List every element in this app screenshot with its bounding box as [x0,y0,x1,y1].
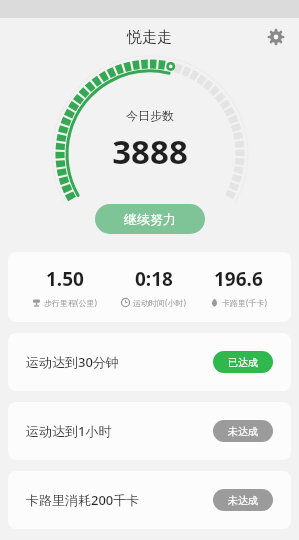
staticText: 运动时间(小时) [133,297,186,308]
staticText: 3888 [112,129,188,174]
button[interactable]: 1.50 [8,252,291,322]
button[interactable]: 运动达到30分钟 [8,333,291,391]
staticText: 悦走走 [127,28,172,47]
staticText: 1.50 [46,266,84,292]
staticText: 运动达到30分钟 [26,353,119,371]
button[interactable]: 运动达到1小时 [8,402,291,460]
staticText: 继续努力 [124,211,176,227]
staticText: 卡路里消耗200千卡 [26,491,140,509]
button[interactable]: 未达成 [213,420,273,442]
staticText: 今日步数 [126,108,174,123]
button[interactable]: 继续努力 [95,204,205,234]
staticText: 未达成 [228,494,258,507]
staticText: 运动达到1小时 [26,422,112,440]
staticText: 已达成 [228,356,258,369]
button[interactable]: 未达成 [213,489,273,511]
staticText: 步行里程(公里) [44,297,97,308]
button[interactable]: Settings [263,24,289,50]
button[interactable]: 卡路里消耗200千卡 [8,471,291,529]
staticText: 0:18 [135,266,173,292]
button[interactable]: 已达成 [213,351,273,373]
staticText: 卡路里(千卡) [222,297,267,308]
staticText: 未达成 [228,425,258,438]
staticText: 196.6 [214,266,263,292]
